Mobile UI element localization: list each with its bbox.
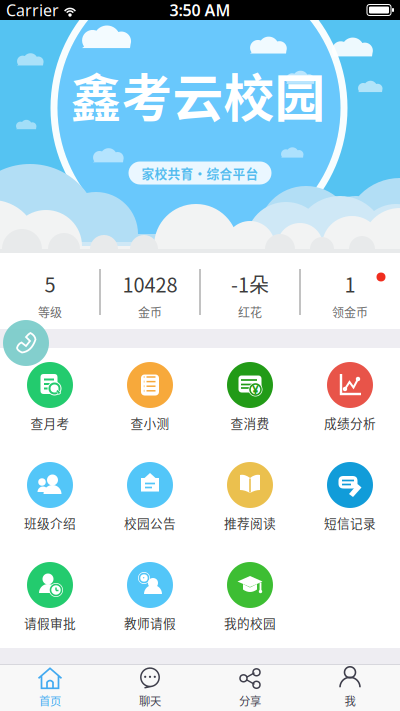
staticText: 校园公告 — [124, 514, 176, 532]
staticText: 查月考 — [30, 414, 69, 432]
staticText: 领金币 — [332, 303, 368, 321]
staticText: 请假审批 — [24, 614, 76, 632]
button[interactable]: 分享 — [200, 664, 300, 711]
button[interactable]: 查小测 — [100, 348, 200, 448]
staticText: 家校共育·综合平台 — [141, 164, 258, 182]
staticText: 首页 — [39, 692, 61, 709]
staticText: 聊天 — [139, 692, 161, 709]
button[interactable]: 我的校园 — [200, 548, 300, 648]
staticText: 教师请假 — [124, 614, 176, 632]
button[interactable]: 我 — [300, 664, 400, 711]
staticText: 我的校园 — [224, 614, 276, 632]
staticText: 鑫考云校园 — [70, 58, 325, 132]
staticText: 5 — [44, 269, 55, 298]
staticText: ¥ — [252, 381, 259, 397]
staticText: 金币 — [138, 303, 162, 321]
button[interactable]: 查月考 — [0, 348, 100, 448]
staticText: 查小测 — [130, 414, 169, 432]
button[interactable]: 推荐阅读 — [200, 448, 300, 548]
staticText: 成绩分析 — [324, 414, 376, 432]
button[interactable]: 10428 — [100, 253, 200, 329]
staticText: Carrier — [6, 0, 59, 21]
staticText: 查消费 — [230, 414, 269, 432]
button[interactable]: 短信记录 — [300, 448, 400, 548]
button[interactable]: 校园公告 — [100, 448, 200, 548]
button[interactable]: 首页 — [0, 664, 100, 711]
staticText: 分享 — [239, 692, 261, 709]
button[interactable]: 聊天 — [100, 664, 200, 711]
staticText: 班级介绍 — [24, 514, 76, 532]
button[interactable]: 请假审批 — [0, 548, 100, 648]
button[interactable]: 成绩分析 — [300, 348, 400, 448]
staticText: 10428 — [122, 269, 177, 298]
button[interactable]: 班级介绍 — [0, 448, 100, 548]
staticText: 1 — [344, 269, 355, 298]
button[interactable]: 教师请假 — [100, 548, 200, 648]
button[interactable]: ¥ — [200, 348, 300, 448]
staticText: 红花 — [238, 303, 262, 321]
staticText: -1朵 — [231, 269, 269, 298]
staticText: 推荐阅读 — [224, 514, 276, 532]
staticText: 短信记录 — [324, 514, 376, 532]
staticText: 3:50 AM — [169, 0, 230, 21]
staticText: 等级 — [38, 303, 62, 321]
button[interactable]: 1 — [300, 253, 400, 329]
button[interactable]: 5 — [0, 253, 100, 329]
button[interactable]: 客服电话 — [3, 320, 49, 366]
staticText: 我 — [344, 692, 355, 709]
button[interactable]: -1朵 — [200, 253, 300, 329]
